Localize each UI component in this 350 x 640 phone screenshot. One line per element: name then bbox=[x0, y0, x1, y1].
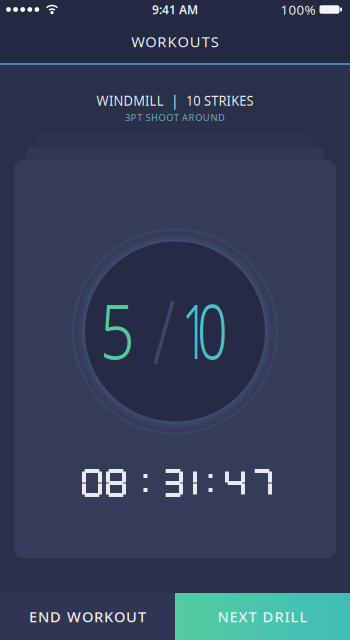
staticText: 100% bbox=[280, 1, 315, 18]
staticText: END WORKOUT bbox=[29, 607, 146, 626]
staticText: 0 bbox=[191, 280, 234, 380]
staticText: 5 bbox=[96, 280, 139, 380]
button[interactable]: END WORKOUT bbox=[0, 593, 175, 640]
staticText: WINDMILL | 10 STRIKES bbox=[86, 90, 264, 110]
staticText: 1 bbox=[173, 280, 216, 380]
button[interactable]: NEXT DRILL bbox=[175, 593, 350, 640]
staticText: 3PT SHOOT AROUND bbox=[125, 111, 225, 124]
staticText: WORKOUTS bbox=[131, 32, 219, 51]
staticText: 9:41 AM bbox=[152, 1, 198, 17]
staticText: NEXT DRILL bbox=[217, 607, 307, 626]
